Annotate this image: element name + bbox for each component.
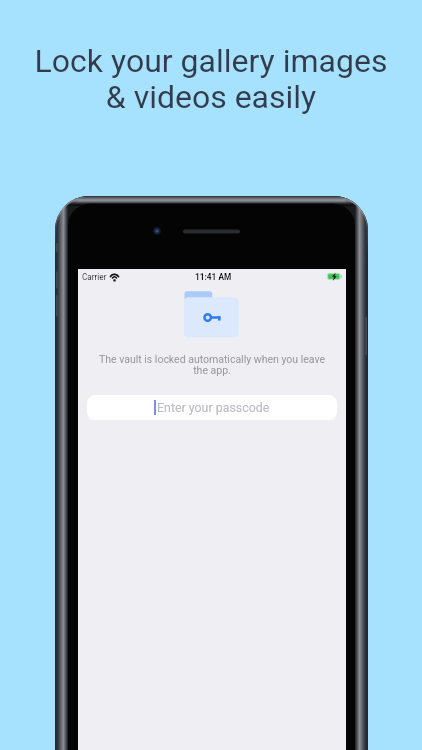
staticText: Enter your passcode bbox=[157, 400, 270, 415]
staticText: Carrier bbox=[82, 272, 107, 282]
staticText: 11:41 AM bbox=[195, 272, 232, 282]
staticText: The vault is locked automatically when y… bbox=[94, 353, 330, 377]
other: Wi-Fi signal bbox=[109, 272, 120, 280]
staticText: Lock your gallery images & videos easily bbox=[0, 42, 422, 116]
button[interactable]: Enter your passcode bbox=[87, 395, 337, 420]
